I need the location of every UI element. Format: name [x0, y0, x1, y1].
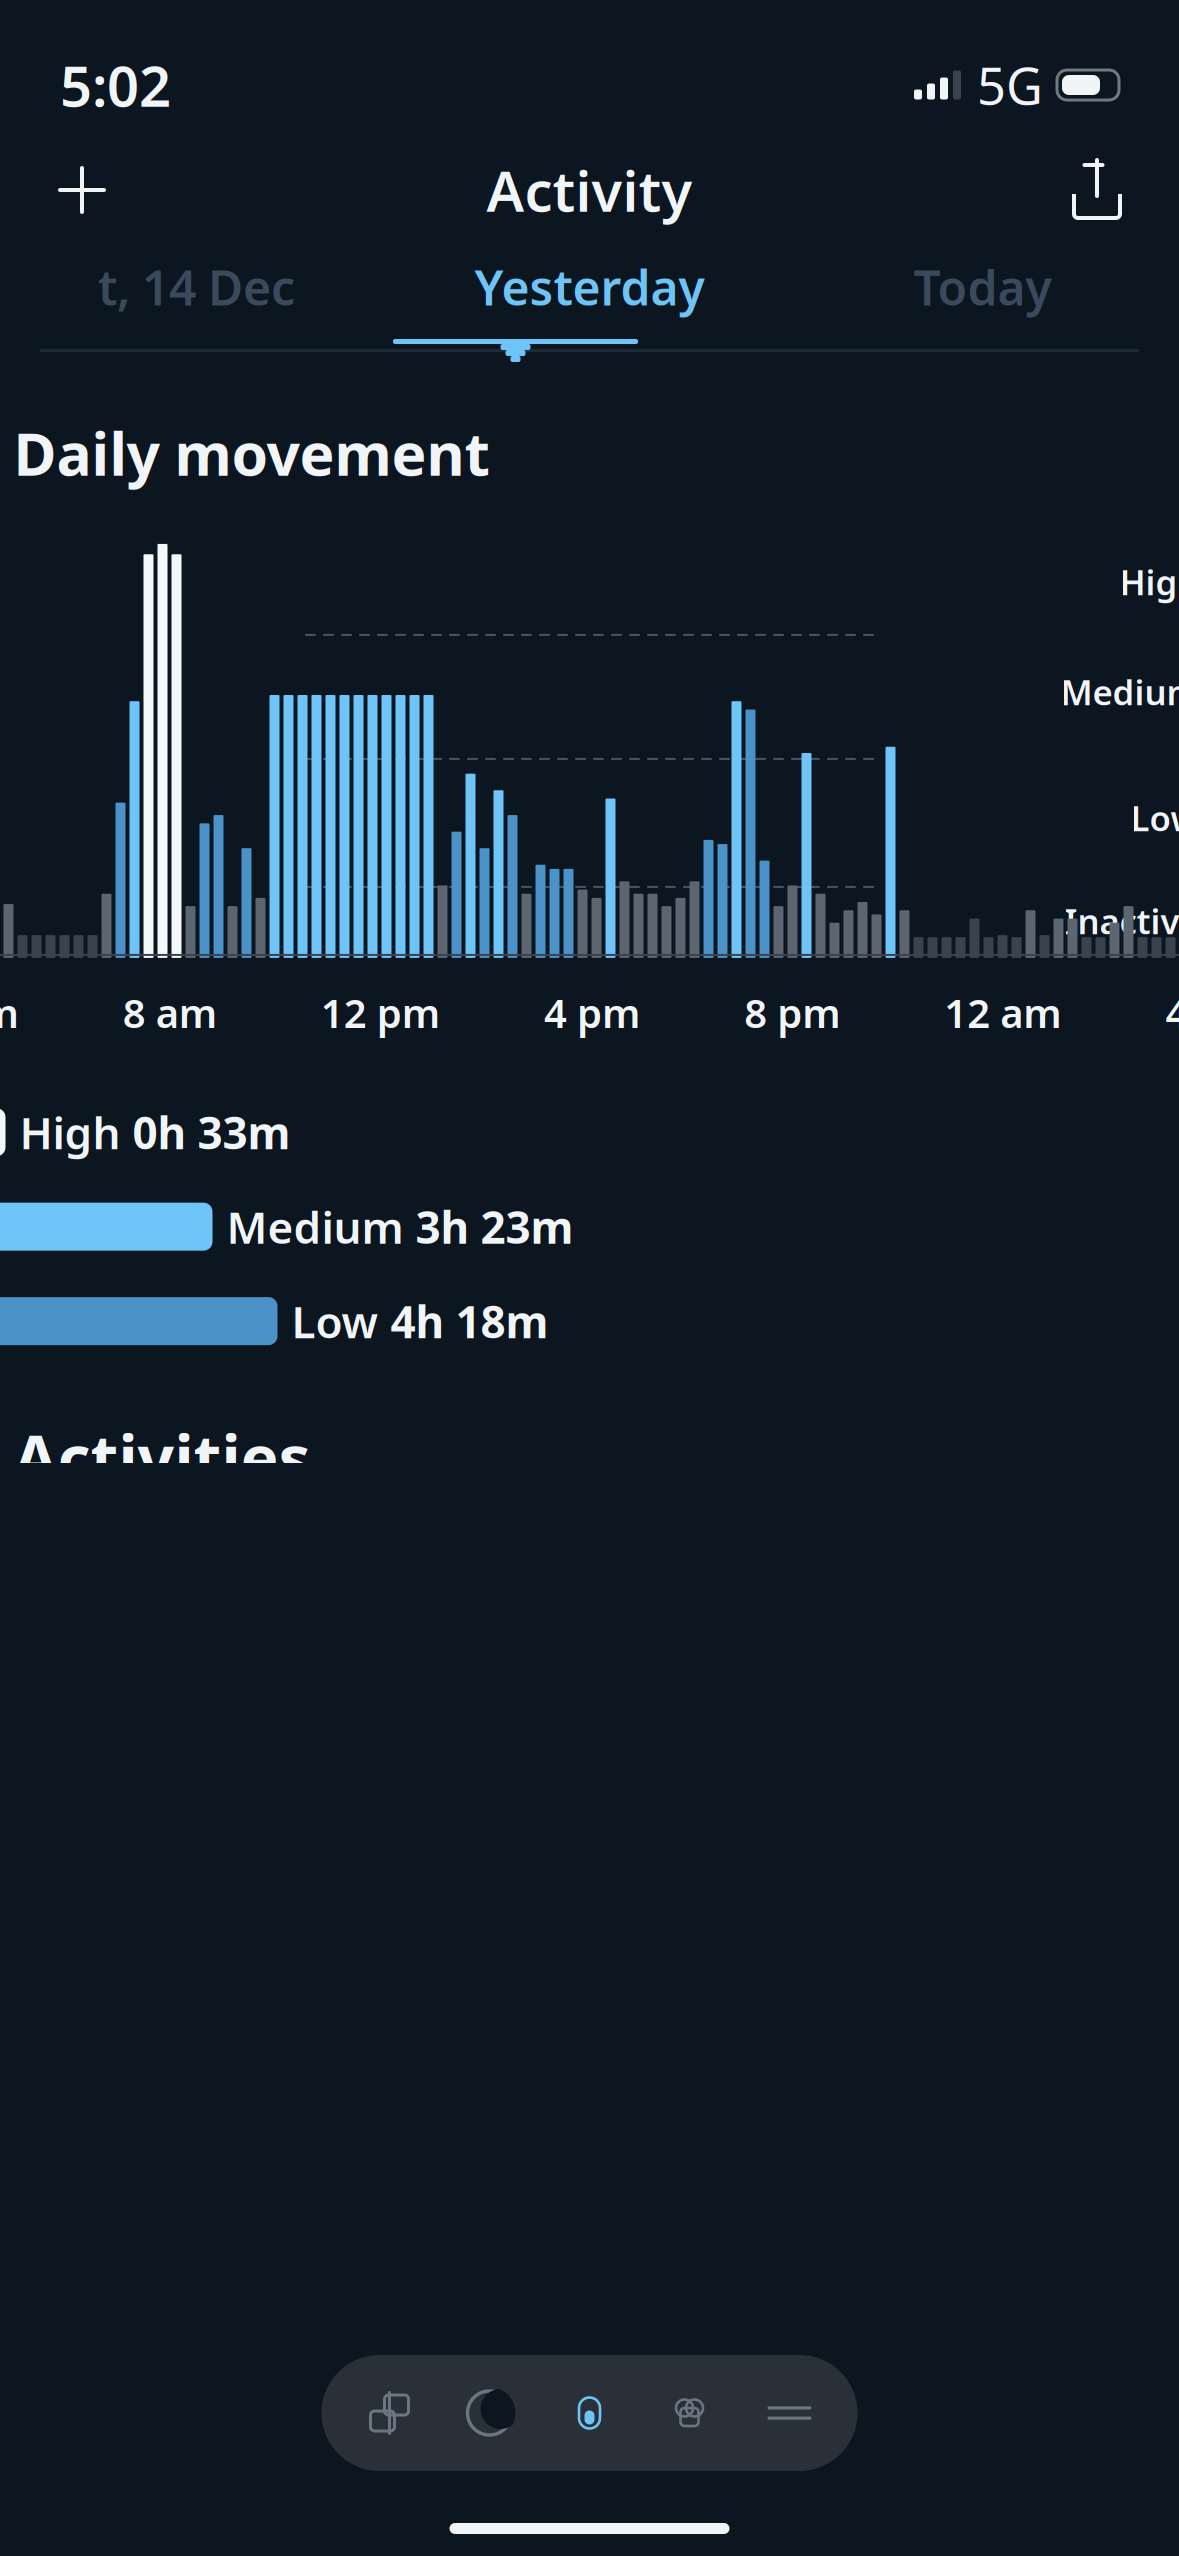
staticText: High [19, 1103, 120, 1161]
button[interactable]: Sleep [439, 2355, 539, 2471]
button[interactable]: Trends [739, 2355, 839, 2471]
staticText: 8 am [123, 986, 217, 1039]
staticText: Yesterday [474, 255, 704, 319]
button[interactable]: Close [46, 154, 118, 226]
button[interactable]: t, 14 Dec [0, 255, 393, 319]
staticText: Daily movement [13, 414, 489, 492]
staticText: Medium [226, 1197, 403, 1256]
staticText: t, 14 Dec [98, 255, 295, 319]
staticText: 4h 18m [390, 1292, 548, 1350]
staticText: Activities [13, 1414, 310, 1499]
staticText: 12 am [944, 986, 1061, 1039]
staticText: Medium [1060, 669, 1179, 715]
staticText: Activity [486, 153, 692, 227]
staticText: 5:02 [60, 48, 171, 122]
staticText: 5G [977, 51, 1043, 119]
staticText: 12 pm [321, 986, 440, 1039]
button[interactable]: Today [786, 255, 1179, 319]
staticText: High [1119, 559, 1179, 605]
button[interactable]: Heart [639, 2355, 739, 2471]
staticText: Low [1130, 795, 1179, 841]
staticText: am [0, 986, 18, 1039]
button[interactable]: Sleep plan [339, 2355, 439, 2471]
staticText: 4 a [1165, 986, 1179, 1039]
staticText: 0h 33m [132, 1103, 290, 1161]
staticText: 8 pm [744, 986, 840, 1039]
staticText: 3h 23m [415, 1197, 573, 1256]
button[interactable]: Yesterday [393, 255, 786, 319]
staticText: Low [291, 1292, 378, 1350]
staticText: 4 pm [544, 986, 640, 1039]
staticText: Inactive [1064, 898, 1179, 944]
button[interactable]: Activity [539, 2355, 639, 2471]
button[interactable]: Share [1061, 154, 1133, 226]
staticText: Today [913, 255, 1051, 319]
